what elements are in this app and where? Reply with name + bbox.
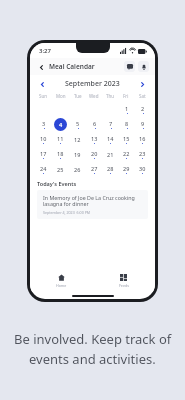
button[interactable]: 26 xyxy=(71,163,84,176)
button[interactable]: 24 xyxy=(37,163,50,176)
staticText: September 4, 2023 6:00 PM xyxy=(43,210,91,215)
staticText: Mon xyxy=(56,93,66,99)
button[interactable]: Home xyxy=(30,270,92,292)
staticText: Wed xyxy=(89,93,99,99)
staticText: Home xyxy=(56,283,67,288)
staticText: Today's Events xyxy=(37,180,77,187)
staticText: 25 xyxy=(57,166,64,173)
staticText: 3:27 xyxy=(39,47,51,55)
staticText: 11 xyxy=(57,135,64,142)
button[interactable]: 3 xyxy=(37,118,50,131)
button[interactable]: 6 xyxy=(88,118,101,131)
button[interactable]: In Memory of Joe De La Cruz cooking lasa… xyxy=(37,190,148,219)
staticText: 21 xyxy=(107,151,114,158)
staticText: September 2023 xyxy=(65,79,120,89)
button[interactable]: 25 xyxy=(54,163,67,176)
staticText: 12 xyxy=(74,136,81,143)
staticText: 2 xyxy=(141,105,145,112)
staticText: 3 xyxy=(42,120,46,127)
staticText: 8 xyxy=(125,120,129,127)
staticText: 9 xyxy=(141,120,145,127)
button[interactable]: 12 xyxy=(71,133,84,146)
staticText: 10 xyxy=(40,135,47,142)
staticText: 16 xyxy=(139,135,146,142)
button[interactable]: 27 xyxy=(88,163,101,176)
staticText: Fri xyxy=(123,93,129,99)
staticText: 22 xyxy=(123,150,130,157)
button[interactable]: 18 xyxy=(54,148,67,161)
staticText: 14 xyxy=(107,135,114,142)
button[interactable]: 7 xyxy=(104,118,117,131)
staticText: 29 xyxy=(123,165,130,172)
button[interactable]: 20 xyxy=(88,148,101,161)
button[interactable]: Next month xyxy=(137,79,148,90)
button[interactable]: 15 xyxy=(120,133,133,146)
button[interactable]: Back xyxy=(36,62,46,72)
staticText: 19 xyxy=(74,151,81,158)
staticText: 30 xyxy=(139,165,146,172)
staticText: 13 xyxy=(91,135,98,142)
button[interactable]: Previous month xyxy=(37,79,48,90)
button[interactable]: 11 xyxy=(54,133,67,146)
staticText: Be involved. Keep track of xyxy=(14,330,172,348)
staticText: 20 xyxy=(91,150,98,157)
staticText: Meal Calendar xyxy=(49,62,95,71)
button[interactable]: 1 xyxy=(120,103,133,116)
staticText: Sun xyxy=(39,93,48,99)
staticText: 28 xyxy=(107,165,114,172)
button[interactable]: 19 xyxy=(71,148,84,161)
staticText: 27 xyxy=(91,165,98,172)
button[interactable]: 5 xyxy=(71,118,84,131)
staticText: 7 xyxy=(109,120,113,127)
staticText: Sat xyxy=(139,93,146,99)
staticText: Tue xyxy=(74,93,82,99)
button[interactable]: Messages xyxy=(124,61,135,72)
staticText: 1 xyxy=(125,105,129,112)
button[interactable]: 16 xyxy=(136,133,149,146)
button[interactable]: 30 xyxy=(136,163,149,176)
staticText: 17 xyxy=(40,150,47,157)
button[interactable]: 28 xyxy=(104,163,117,176)
button[interactable]: 9 xyxy=(136,118,149,131)
button[interactable]: 10 xyxy=(37,133,50,146)
staticText: 15 xyxy=(123,135,130,142)
button[interactable]: Feeds xyxy=(92,270,155,292)
staticText: 23 xyxy=(139,150,146,157)
staticText: Thu xyxy=(106,93,115,99)
button[interactable]: 29 xyxy=(120,163,133,176)
button[interactable]: 21 xyxy=(104,148,117,161)
button[interactable]: 13 xyxy=(88,133,101,146)
staticText: 26 xyxy=(74,166,81,173)
staticText: 18 xyxy=(57,150,64,157)
button[interactable]: 2 xyxy=(136,103,149,116)
button[interactable]: Notifications xyxy=(138,61,149,72)
staticText: 6 xyxy=(93,120,97,127)
button[interactable]: 14 xyxy=(104,133,117,146)
staticText: In Memory of Joe De La Cruz cooking lasa… xyxy=(43,194,142,208)
button[interactable]: 17 xyxy=(37,148,50,161)
staticText: 24 xyxy=(40,165,47,172)
button[interactable]: 22 xyxy=(120,148,133,161)
staticText: 5 xyxy=(76,120,80,127)
staticText: 4 xyxy=(59,121,63,128)
staticText: Feeds xyxy=(119,283,129,288)
staticText: events and activities. xyxy=(29,350,156,368)
button[interactable]: 4 xyxy=(54,118,67,131)
button[interactable]: 23 xyxy=(136,148,149,161)
button[interactable]: 8 xyxy=(120,118,133,131)
